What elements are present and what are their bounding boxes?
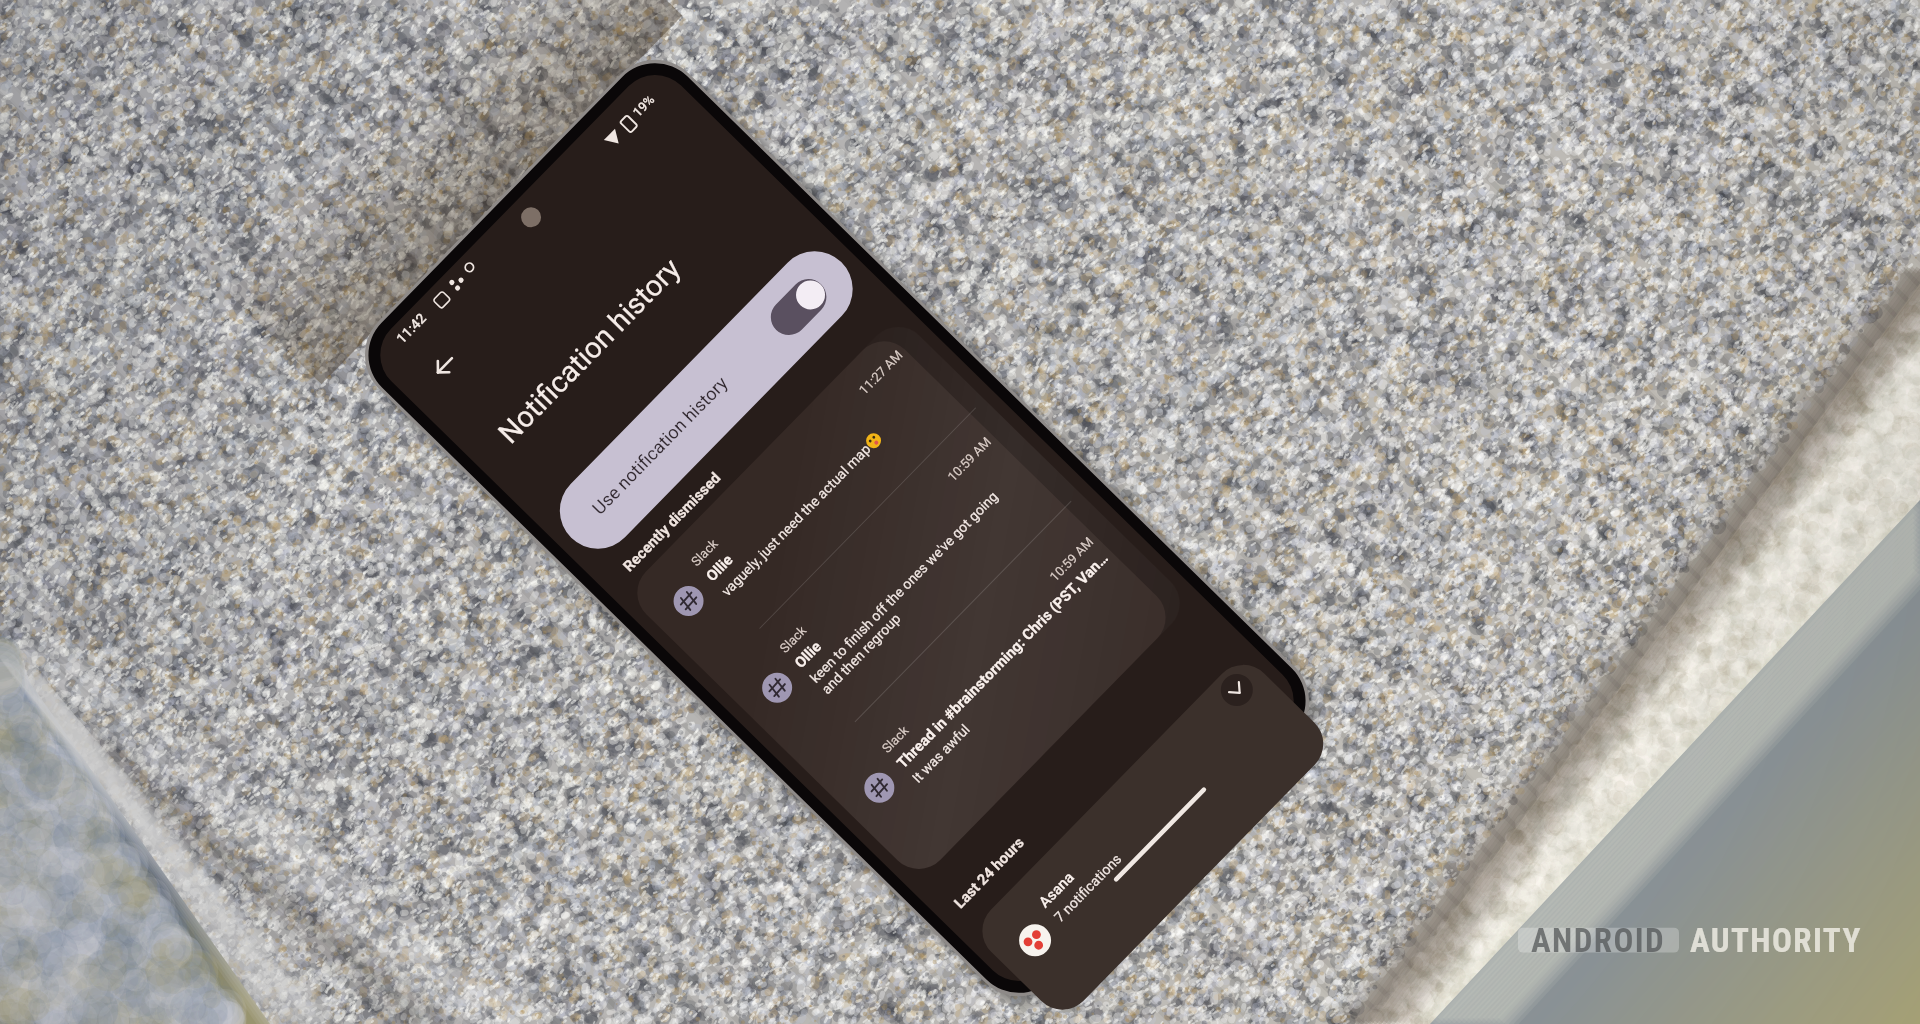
button[interactable]: [716, 388, 1101, 778]
button[interactable]: [969, 636, 1329, 1000]
button[interactable]: Back: [411, 330, 483, 402]
button[interactable]: [624, 298, 1004, 682]
button[interactable]: [544, 219, 884, 564]
button[interactable]: Use notification history toggle: [775, 244, 862, 332]
button[interactable]: Expand: [1209, 661, 1266, 718]
button[interactable]: [813, 483, 1207, 881]
